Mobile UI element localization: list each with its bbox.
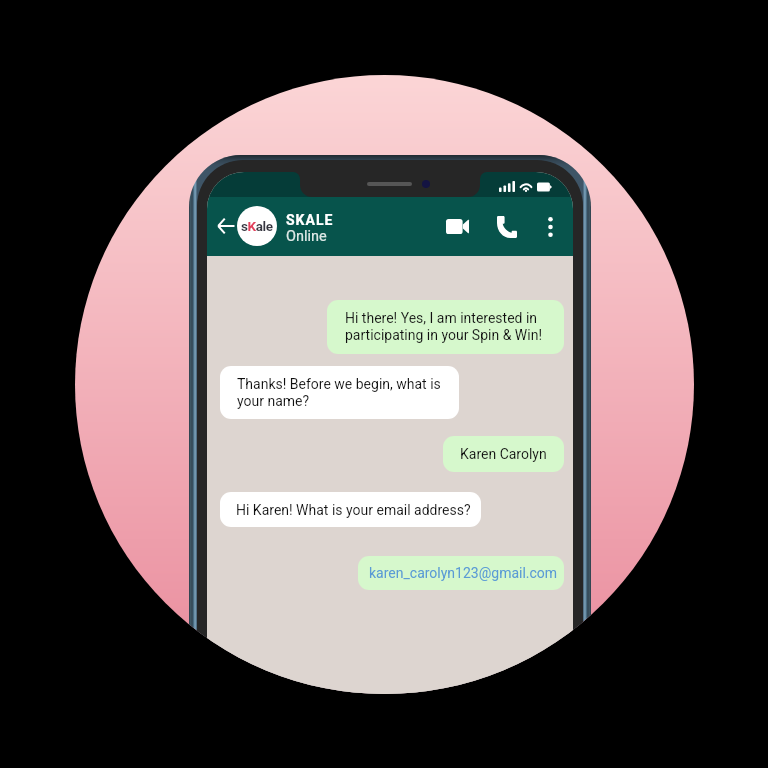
button[interactable]: Hi Karen! What is your email address? [220,492,481,527]
button[interactable]: Hi there! Yes, I am interested in partic… [327,300,564,354]
staticText: Hi there! Yes, I am interested in partic… [345,310,542,344]
staticText: SKALE [286,212,334,228]
button[interactable]: sKale [237,206,277,246]
button[interactable]: More options [537,210,564,243]
button[interactable]: Video call [436,211,479,242]
button[interactable]: karen_carolyn123@gmail.com [358,556,564,590]
staticText: Online [286,228,327,245]
staticText: Karen Carolyn [460,446,547,462]
button[interactable]: Thanks! Before we begin, what is your na… [220,366,459,419]
button[interactable]: Karen Carolyn [443,436,564,472]
button[interactable]: Voice call [487,210,526,243]
staticText: Thanks! Before we begin, what is your na… [237,376,441,410]
button[interactable]: Back [211,211,241,241]
staticText: karen_carolyn123@gmail.com [369,565,558,581]
staticText: Hi Karen! What is your email address? [236,502,471,518]
staticText: sKale [241,218,273,234]
